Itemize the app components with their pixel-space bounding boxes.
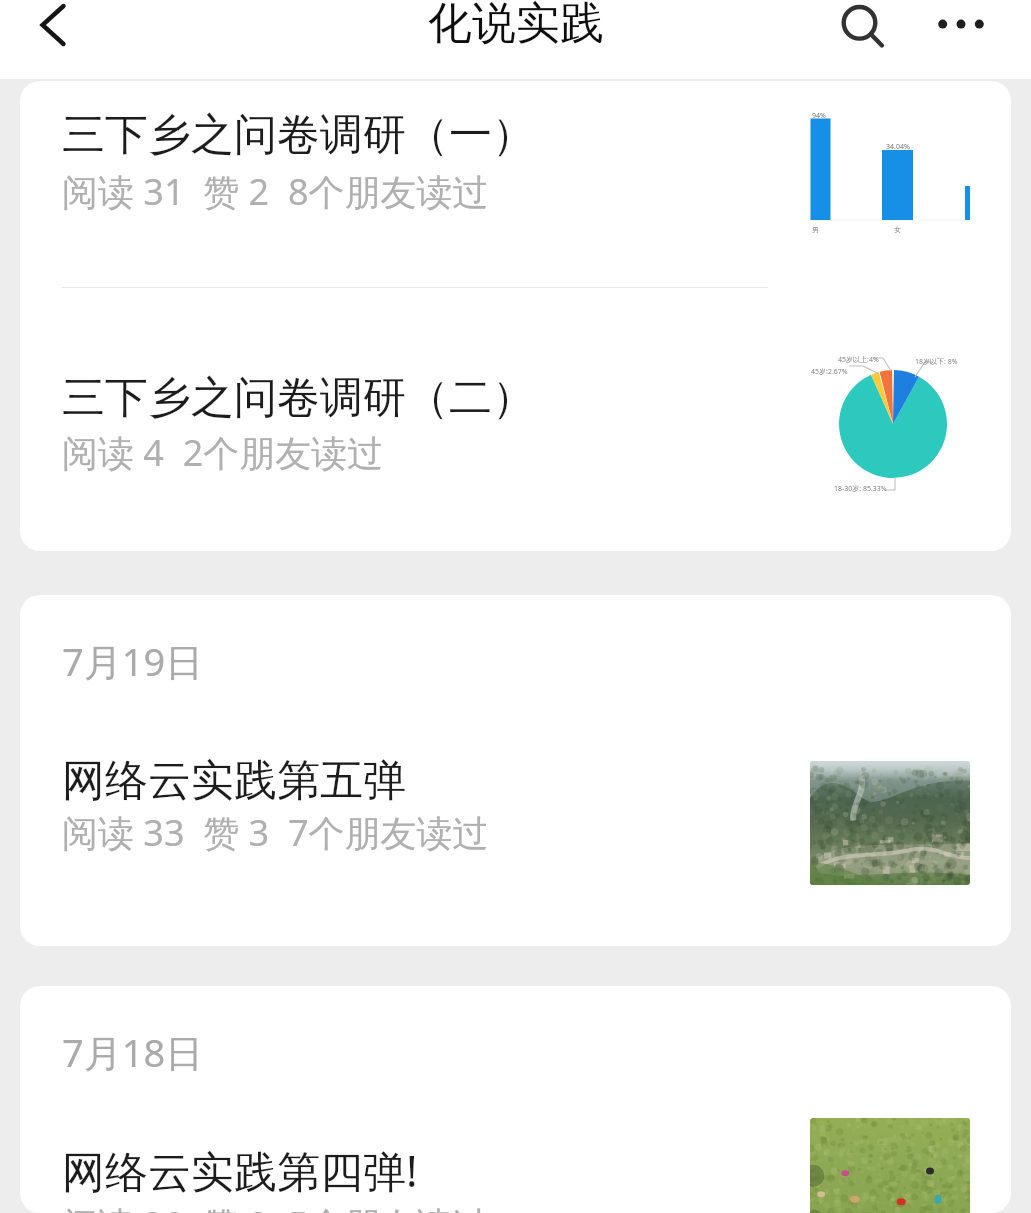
staticText: 94% xyxy=(812,111,826,121)
button[interactable]: 网络云实践第五弹 xyxy=(20,699,1011,946)
staticText: 阅读 28 赞 2 5个朋友读过 xyxy=(62,1200,489,1213)
staticText: 18-30岁: 85.33% xyxy=(834,484,887,494)
staticText: 45岁:2.67% xyxy=(811,367,848,377)
button[interactable]: Back xyxy=(14,0,76,56)
staticText: 女 xyxy=(894,225,901,234)
staticText: 阅读 33 赞 3 7个朋友读过 xyxy=(62,808,489,857)
button[interactable]: 三下乡之问卷调研（一） xyxy=(20,81,1011,287)
staticText: 网络云实践第五弹 xyxy=(62,754,406,808)
staticText: 网络云实践第四弹! xyxy=(62,1141,418,1200)
staticText: 男 xyxy=(812,225,819,234)
staticText: 45岁以上:4% xyxy=(838,355,879,365)
button[interactable]: 网络云实践第四弹! xyxy=(20,1090,1011,1213)
staticText: 三下乡之问卷调研（一） xyxy=(62,108,535,162)
staticText: 7月18日 xyxy=(62,1026,204,1078)
button[interactable]: Search xyxy=(825,0,893,60)
staticText: 阅读 31 赞 2 8个朋友读过 xyxy=(62,167,489,216)
staticText: 三下乡之问卷调研（二） xyxy=(62,371,535,425)
staticText: 7月19日 xyxy=(62,635,204,687)
button[interactable]: More options xyxy=(926,0,996,61)
staticText: 34.04% xyxy=(886,142,910,152)
staticText: 阅读 4 2个朋友读过 xyxy=(62,428,384,477)
staticText: 18岁以下: 8% xyxy=(915,357,958,367)
staticText: 化说实践 xyxy=(428,0,604,51)
button[interactable]: 三下乡之问卷调研（二） xyxy=(20,288,1011,551)
